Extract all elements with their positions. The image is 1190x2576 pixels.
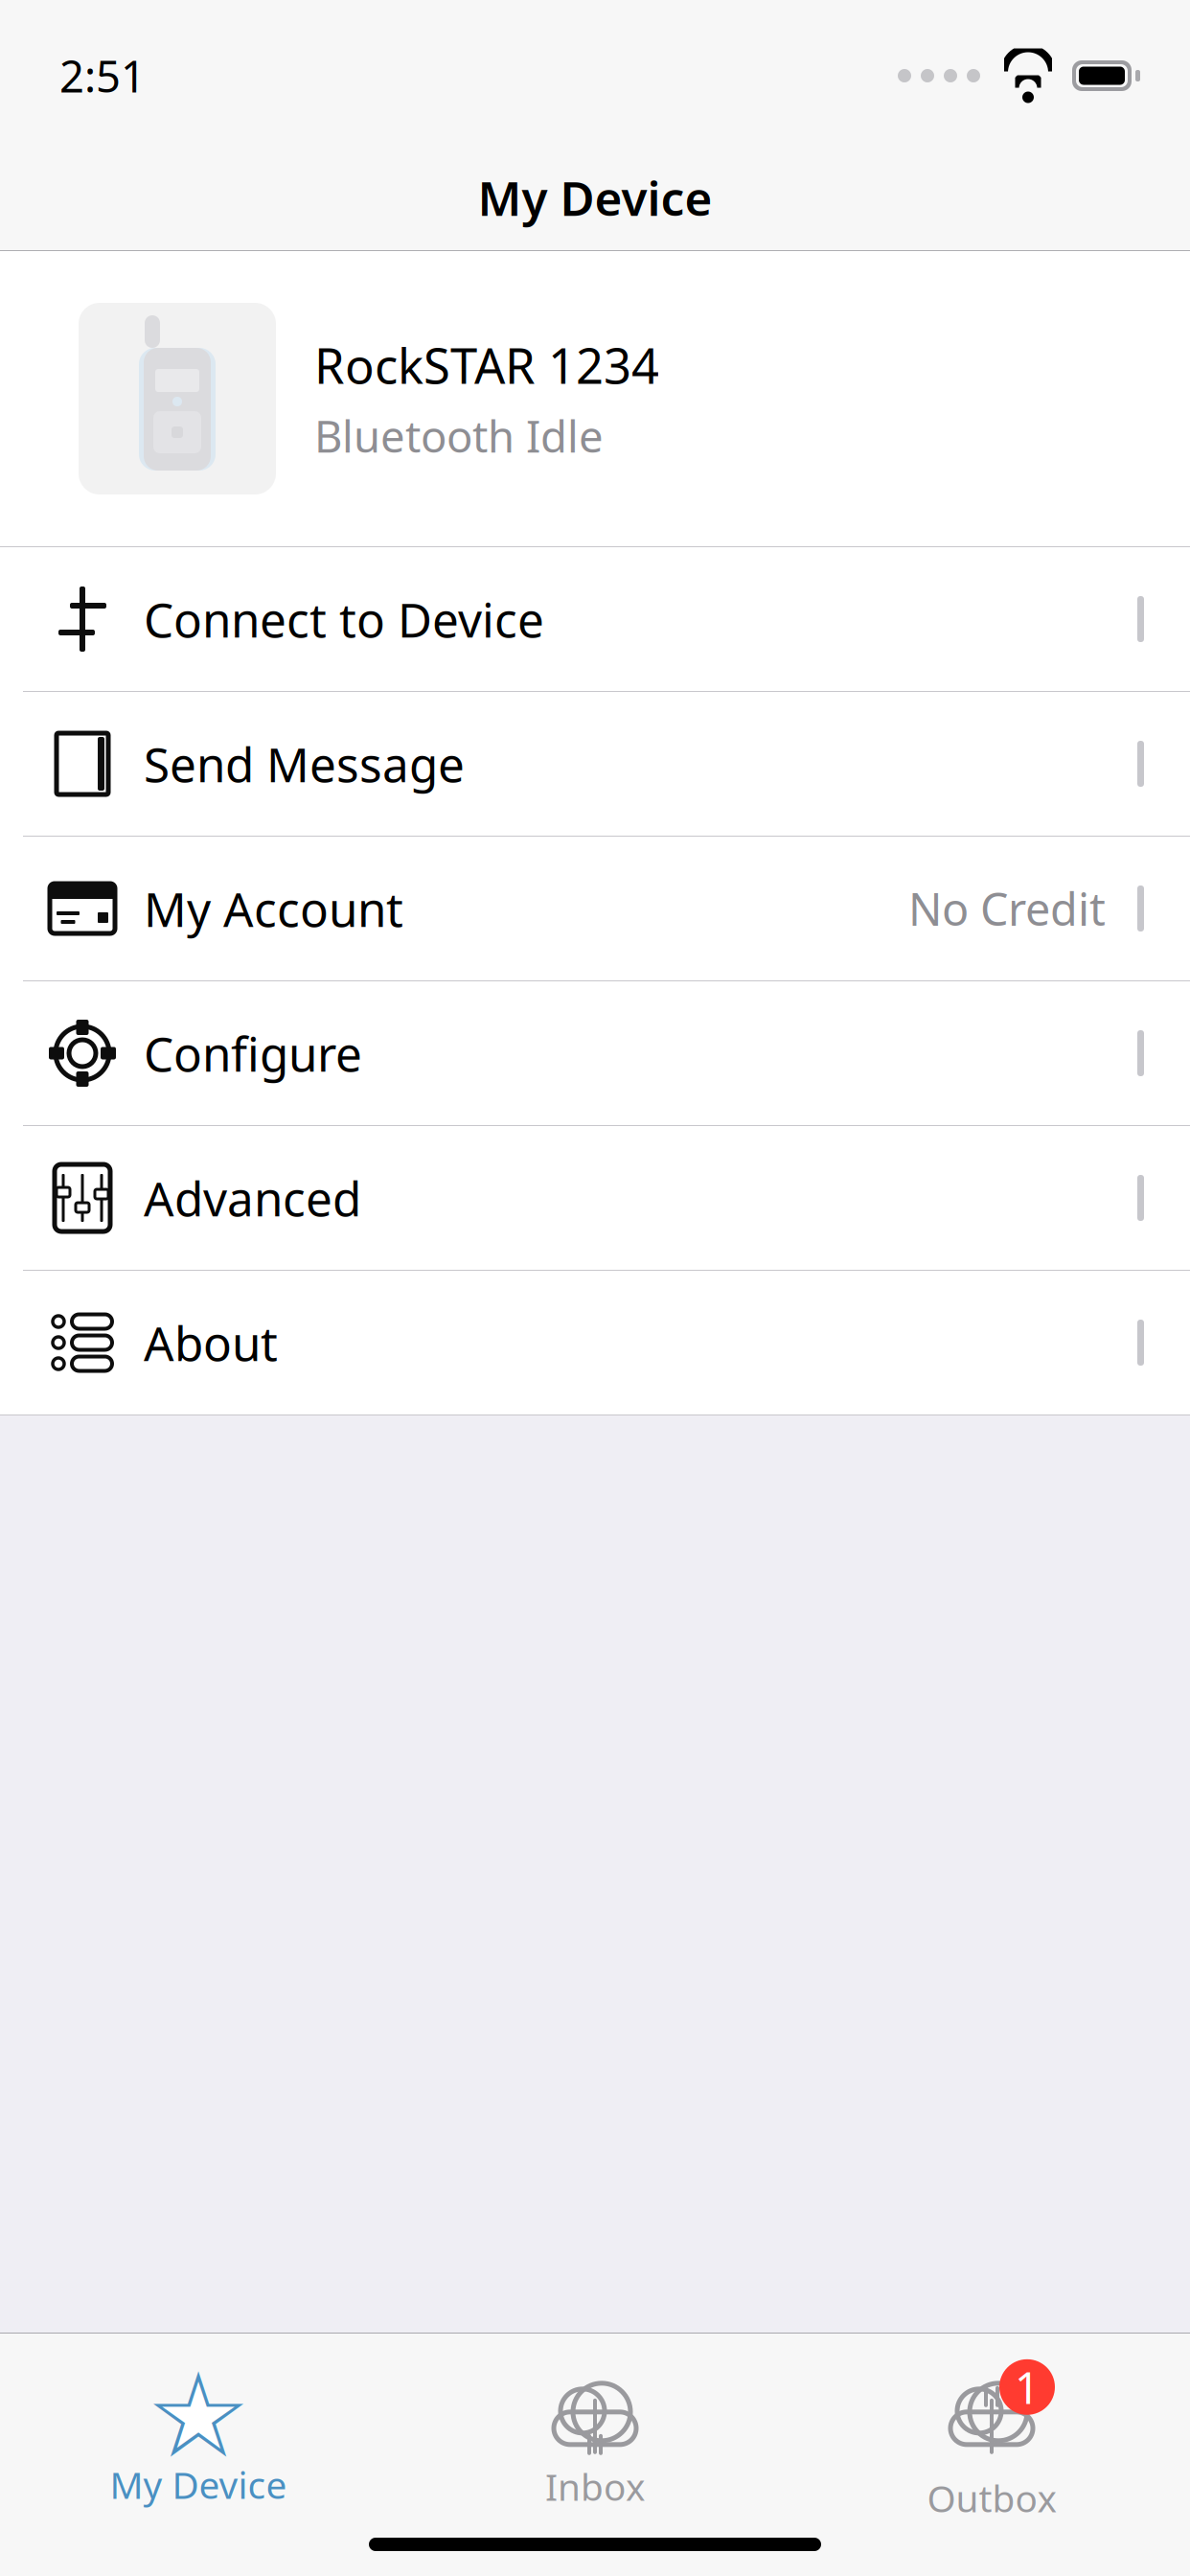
staticText: RockSTAR 1234	[314, 333, 659, 397]
staticText: Bluetooth Idle	[314, 407, 604, 465]
button[interactable]: About	[0, 1271, 1190, 1415]
staticText: My Device	[478, 166, 712, 229]
staticText: 2:51	[59, 47, 146, 105]
button[interactable]: Send Message	[0, 692, 1190, 837]
button[interactable]: ★	[0, 2362, 397, 2547]
button[interactable]: 1	[793, 2349, 1190, 2561]
staticText: My Device	[110, 2460, 287, 2509]
staticText: ★	[146, 2349, 251, 2482]
button[interactable]: Configure	[0, 981, 1190, 1126]
button[interactable]: Connect to Device	[0, 547, 1190, 692]
staticText: Inbox	[545, 2462, 645, 2511]
staticText: Outbox	[927, 2473, 1056, 2523]
staticText: Send Message	[144, 732, 465, 795]
button[interactable]: My Account	[0, 837, 1190, 981]
staticText: Configure	[144, 1022, 362, 1085]
staticText: Connect to Device	[144, 588, 544, 650]
button[interactable]: Advanced	[0, 1126, 1190, 1271]
staticText: ☆	[146, 2349, 251, 2482]
staticText: Advanced	[144, 1166, 361, 1229]
button[interactable]: RockSTAR 1234	[0, 251, 1190, 547]
staticText: About	[144, 1311, 278, 1374]
staticText: 1	[1015, 2358, 1040, 2416]
button[interactable]: Inbox	[397, 2360, 793, 2549]
staticText: No Credit	[908, 879, 1106, 938]
staticText: My Account	[144, 877, 403, 940]
